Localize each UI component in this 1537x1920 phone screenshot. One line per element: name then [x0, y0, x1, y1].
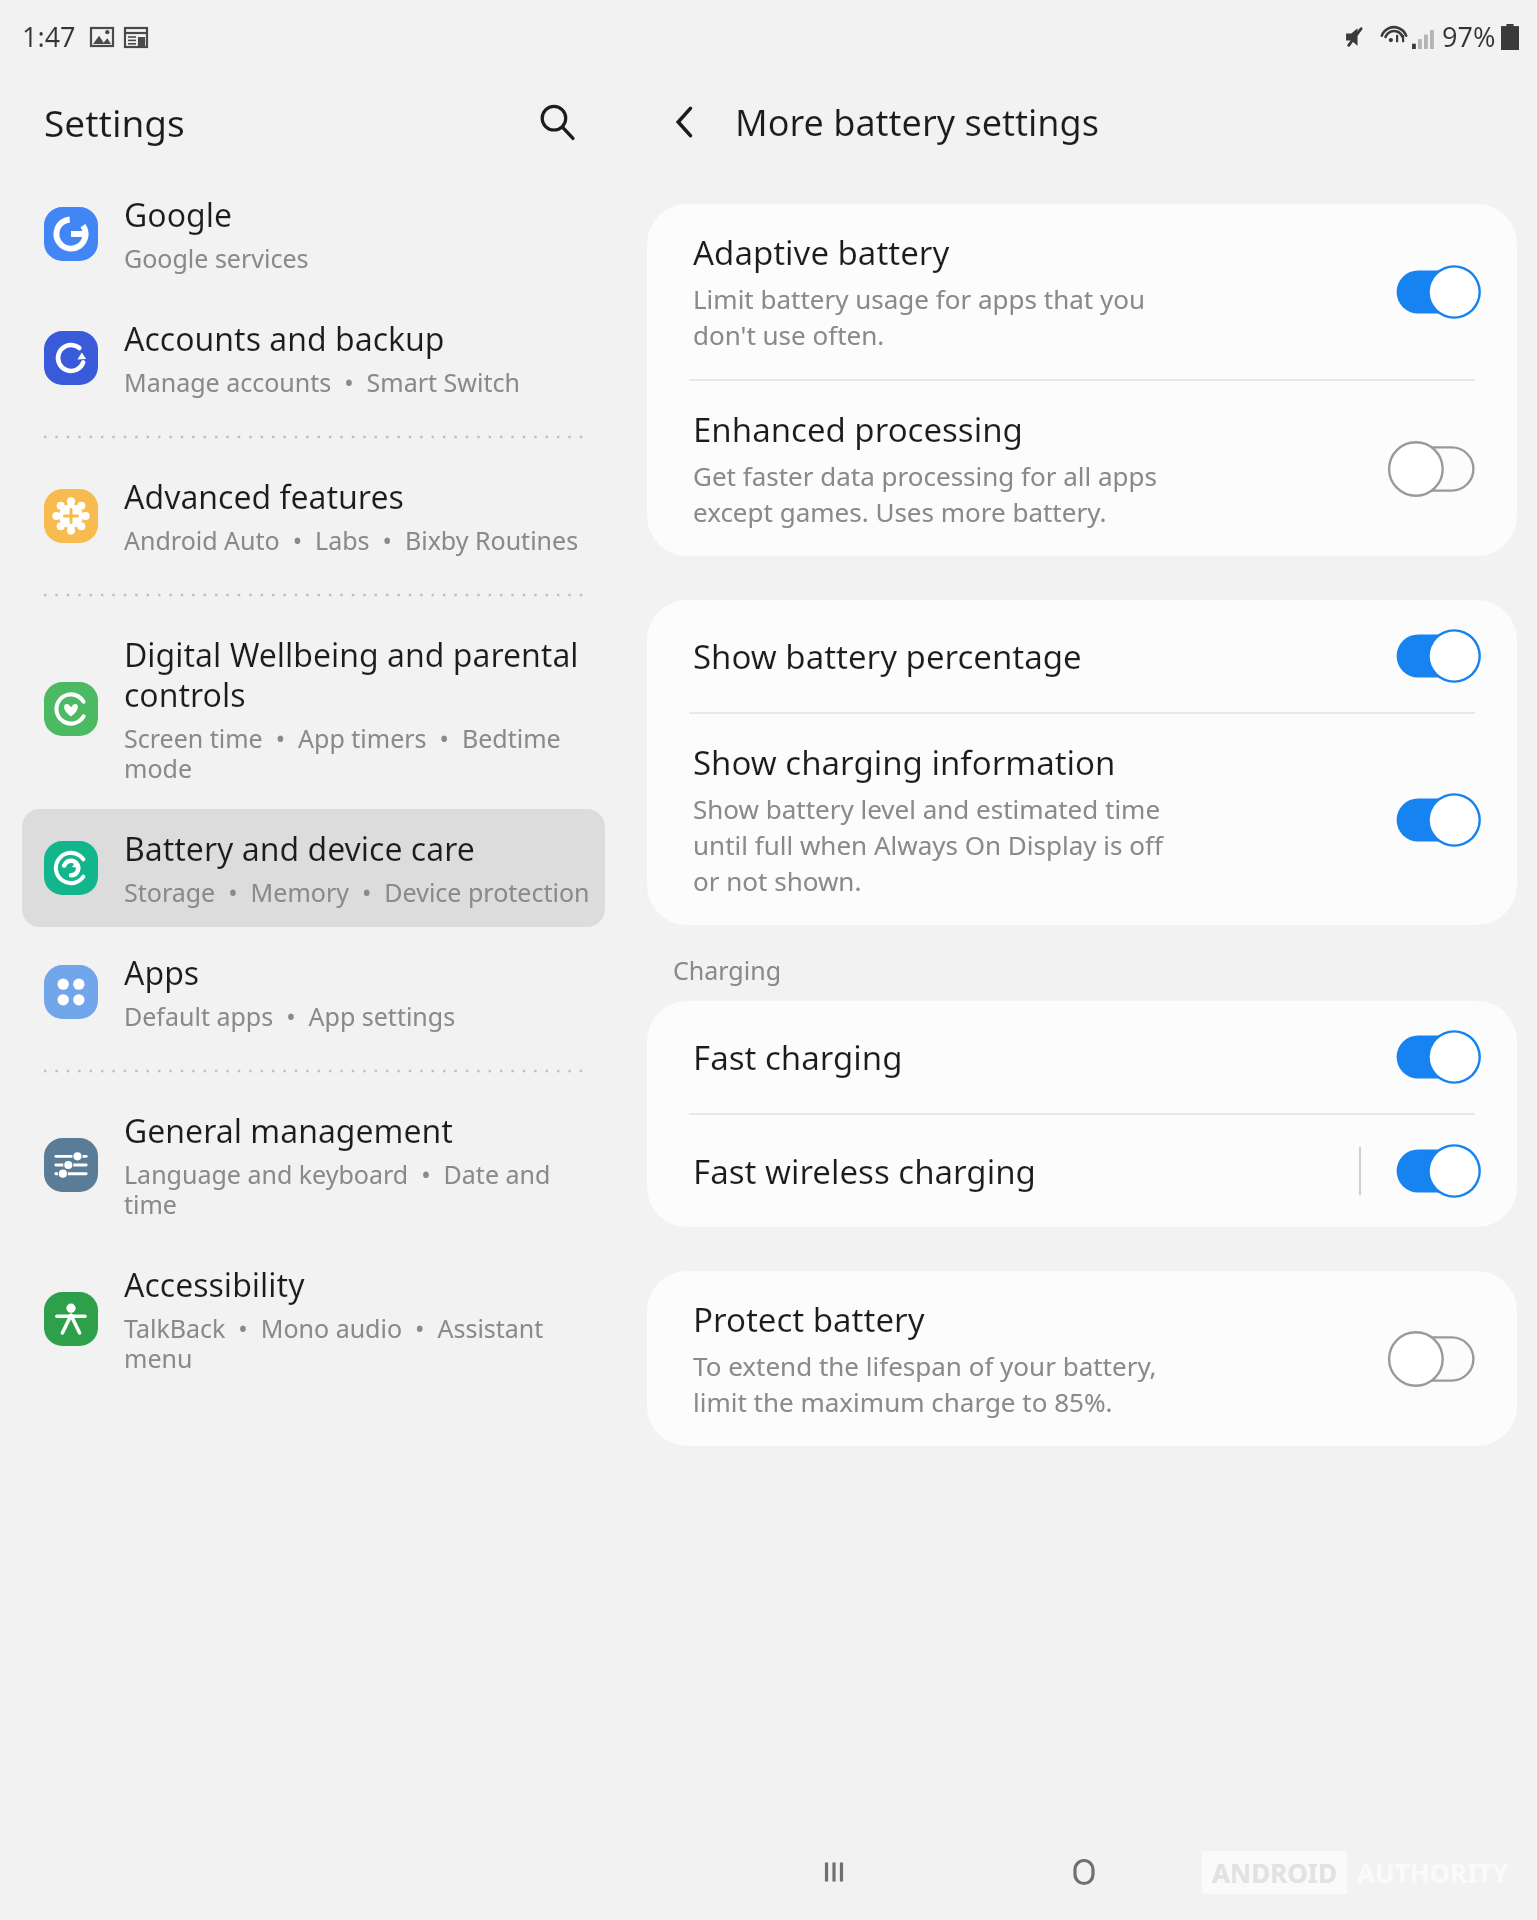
button[interactable]: Apps [22, 933, 605, 1051]
button[interactable]: Search [529, 94, 585, 150]
button[interactable]: Home [1039, 1827, 1129, 1917]
staticText: Show battery percentage [693, 634, 1082, 679]
staticText: To extend the lifespan of your battery, … [693, 1348, 1157, 1420]
staticText: Protect battery [693, 1297, 925, 1342]
staticText: Battery and device care [124, 827, 475, 871]
staticText: Limit battery usage for apps that you do… [693, 281, 1145, 353]
button[interactable]: Battery and device care [22, 809, 605, 927]
button[interactable]: Adaptive battery [647, 204, 1517, 379]
staticText: Adaptive battery [693, 230, 950, 275]
button[interactable]: Accounts and backup [22, 299, 605, 417]
staticText: General management [124, 1109, 453, 1153]
staticText: Accounts and backup [124, 317, 445, 361]
button[interactable]: Show charging information [1387, 790, 1483, 850]
staticText: Android Auto • Labs • Bixby Routines [124, 523, 579, 557]
button[interactable]: Adaptive battery [1387, 262, 1483, 322]
staticText: Screen time • App timers • Bedtime mode [124, 721, 591, 785]
button[interactable]: Show battery percentage [647, 600, 1517, 712]
button[interactable]: Protect battery [647, 1271, 1517, 1446]
button[interactable]: Back [657, 94, 713, 150]
staticText: Apps [124, 951, 200, 995]
staticText: Accessibility [124, 1263, 305, 1307]
staticText: 1:47 [22, 18, 76, 55]
staticText: Language and keyboard • Date and time [124, 1157, 591, 1221]
button[interactable]: Show battery percentage [1387, 626, 1483, 686]
staticText: AUTHORITY [1357, 1855, 1509, 1890]
staticText: Fast wireless charging [693, 1149, 1036, 1194]
staticText: Storage • Memory • Device protection [124, 875, 590, 909]
button[interactable]: General management [22, 1091, 605, 1239]
staticText: Show battery level and estimated time un… [693, 791, 1163, 899]
button[interactable]: Fast wireless charging [1387, 1141, 1483, 1201]
button[interactable]: Fast wireless charging [647, 1115, 1517, 1227]
button[interactable]: Google [22, 175, 605, 293]
button[interactable]: Digital Wellbeing and parental controls [22, 615, 605, 803]
button[interactable]: Back [1288, 1827, 1378, 1917]
staticText: Digital Wellbeing and parental controls [124, 633, 591, 717]
staticText: ANDROID [1212, 1855, 1337, 1890]
staticText: 97% [1442, 18, 1496, 55]
button[interactable]: Fast charging [647, 1001, 1517, 1113]
staticText: Fast charging [693, 1035, 903, 1080]
button[interactable]: Show charging information [647, 714, 1517, 925]
button[interactable]: Accessibility [22, 1245, 605, 1393]
staticText: Google services [124, 241, 309, 275]
staticText: Advanced features [124, 475, 404, 519]
staticText: Show charging information [693, 740, 1116, 785]
button[interactable]: Enhanced processing [1387, 439, 1483, 499]
staticText: Get faster data processing for all apps … [693, 458, 1158, 530]
staticText: Charging [673, 953, 782, 987]
staticText: Enhanced processing [693, 407, 1023, 452]
staticText: Default apps • App settings [124, 999, 456, 1033]
button[interactable]: Fast charging [1387, 1027, 1483, 1087]
staticText: Manage accounts • Smart Switch [124, 365, 520, 399]
staticText: More battery settings [735, 98, 1099, 147]
button[interactable]: Advanced features [22, 457, 605, 575]
button[interactable]: Protect battery [1387, 1329, 1483, 1389]
button[interactable]: Recents [789, 1827, 879, 1917]
staticText: TalkBack • Mono audio • Assistant menu [124, 1311, 591, 1375]
staticText: Settings [44, 97, 185, 147]
button[interactable]: Enhanced processing [647, 381, 1517, 556]
staticText: Google [124, 193, 233, 237]
